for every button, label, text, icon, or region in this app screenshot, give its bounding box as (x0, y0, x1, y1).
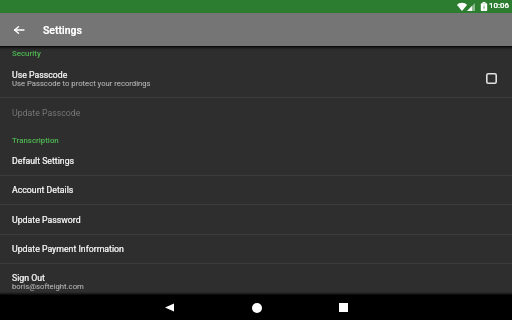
button[interactable]: Update Password (0, 205, 512, 234)
staticText: Sign Out (12, 273, 45, 283)
staticText: Update Passcode (12, 108, 81, 118)
button[interactable]: Update Payment Information (0, 235, 512, 263)
button[interactable]: Default Settings (0, 147, 512, 175)
button[interactable]: Use Passcode (0, 61, 512, 97)
button[interactable]: Use Passcode (482, 69, 500, 87)
staticText: Update Password (12, 215, 81, 225)
button[interactable]: Home (245, 296, 268, 319)
button[interactable]: Back (4, 15, 34, 45)
staticText: Use Passcode to protect your recordings (12, 79, 151, 88)
staticText: Use Passcode (12, 70, 68, 80)
button[interactable]: Update Passcode (0, 98, 512, 127)
staticText: Update Payment Information (12, 244, 124, 254)
staticText: Security (12, 49, 41, 58)
button[interactable]: Recent apps (332, 296, 355, 319)
staticText: Settings (43, 24, 82, 36)
button[interactable]: Account Details (0, 176, 512, 204)
staticText: boris@softeight.com (12, 282, 84, 291)
staticText: Default Settings (12, 156, 75, 166)
staticText: 10:06 (489, 1, 510, 10)
staticText: Transcription (12, 136, 59, 145)
button[interactable]: Sign Out (0, 264, 512, 300)
staticText: Account Details (12, 185, 74, 195)
button[interactable]: Back (158, 296, 181, 319)
